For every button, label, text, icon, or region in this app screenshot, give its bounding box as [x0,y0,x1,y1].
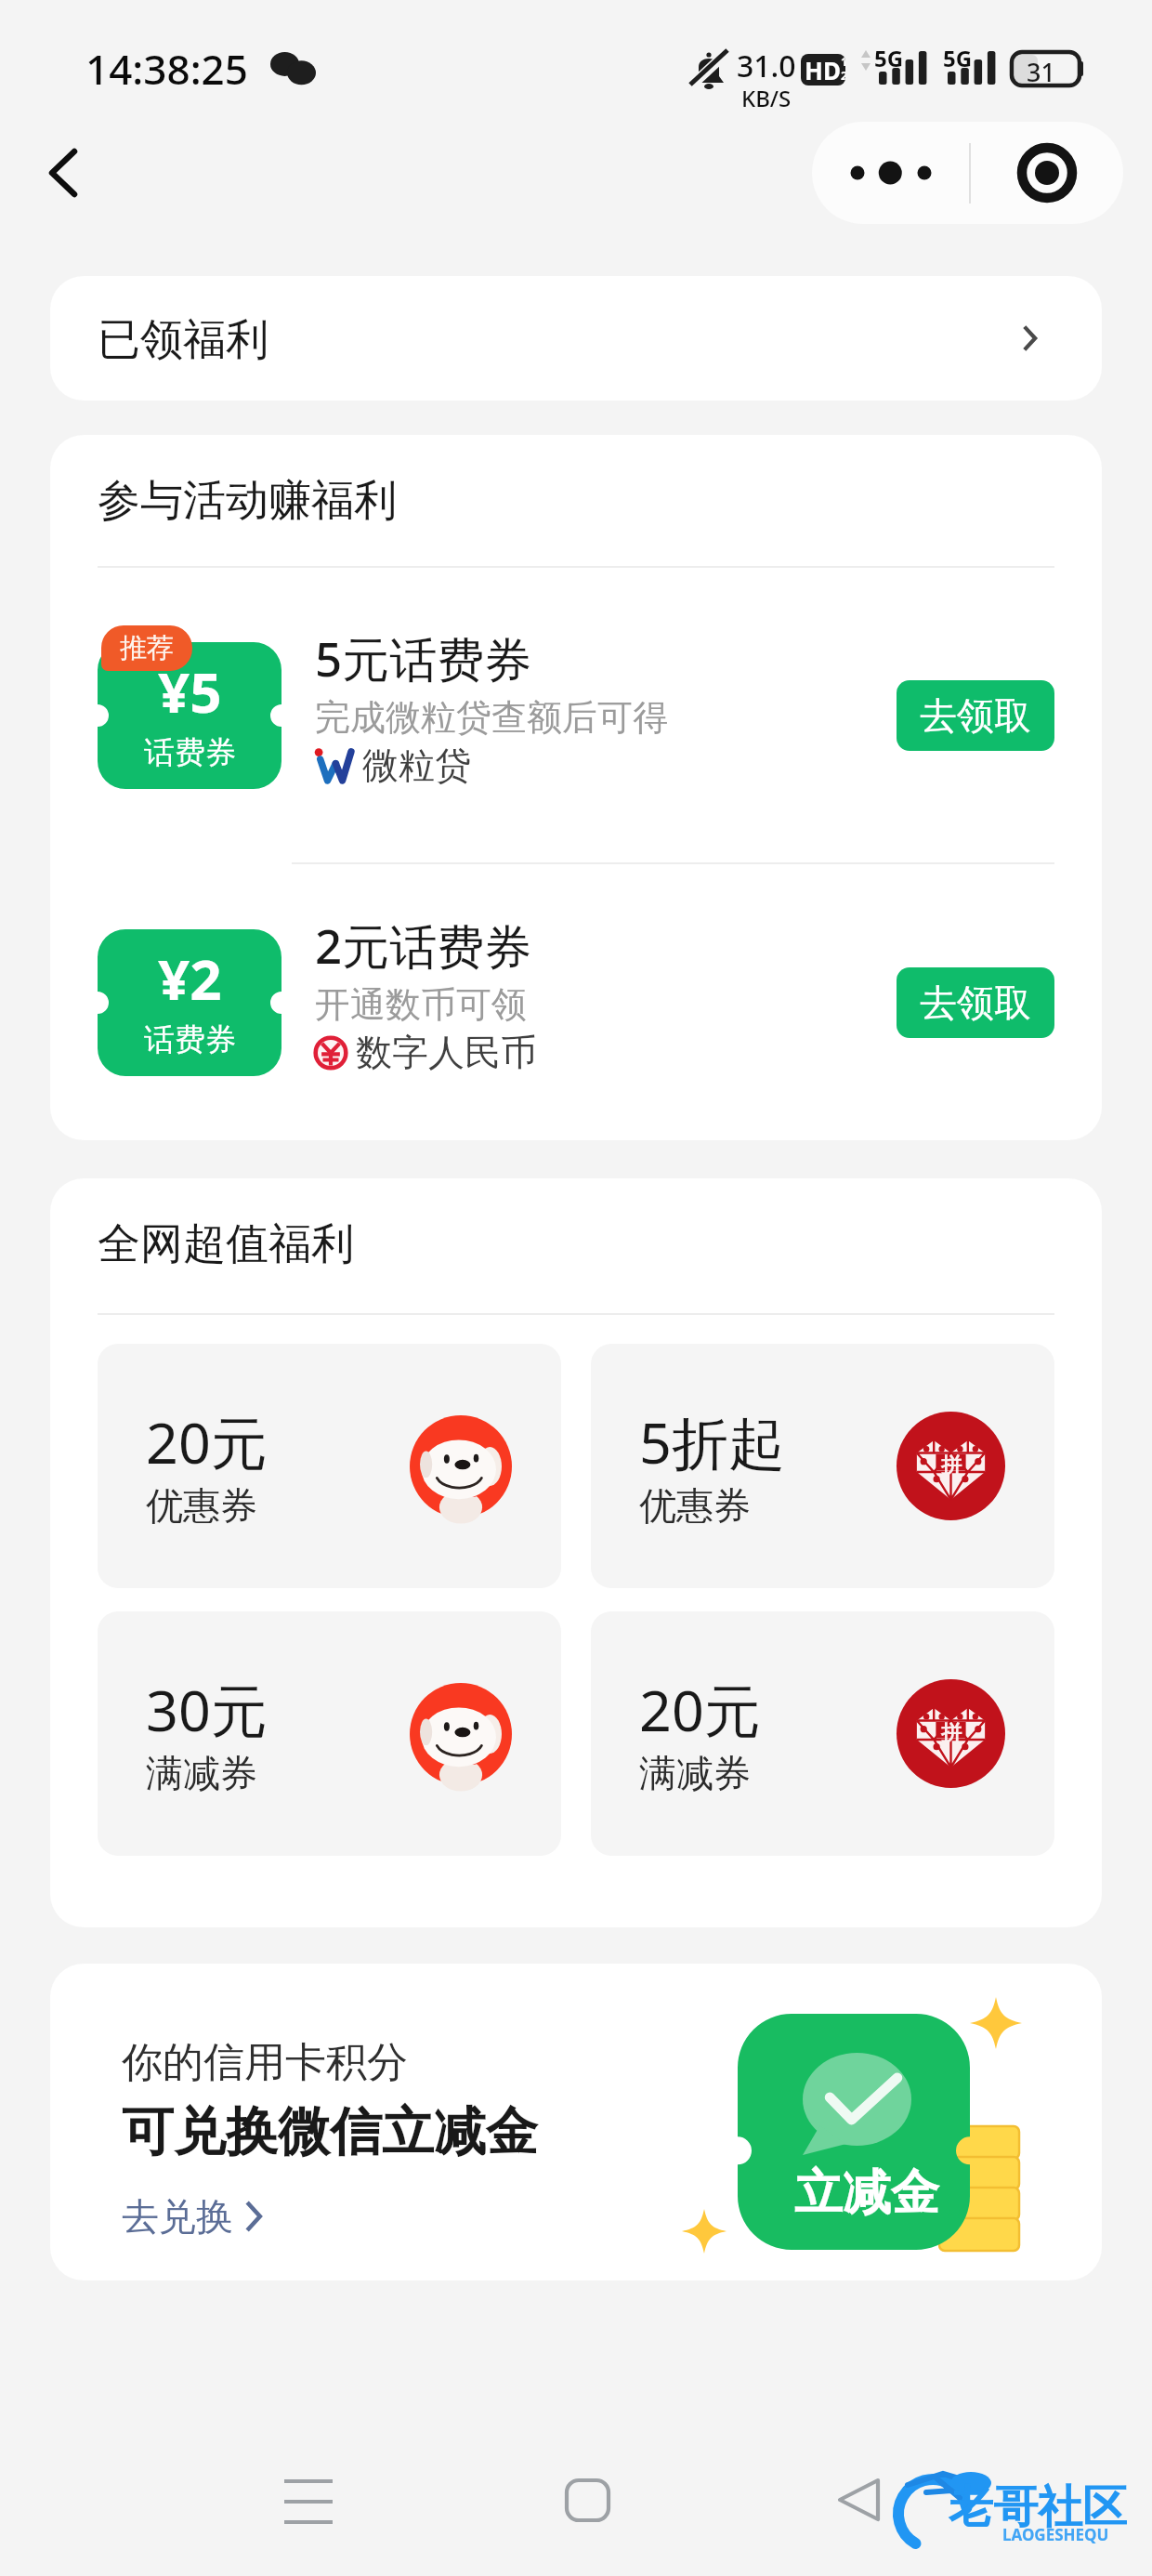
staticText: 话费券 [144,733,236,772]
staticText: 开通数币可领 [315,982,527,1027]
staticText: 5元话费券 [315,625,532,690]
staticText: 满减券 [639,1750,751,1796]
staticText: 5G [874,43,904,73]
button[interactable]: 5折起 [591,1344,1054,1588]
staticText: 优惠券 [146,1482,257,1529]
button[interactable]: 你的信用卡积分 [50,1964,1102,2280]
staticText: 20元 [639,1671,761,1748]
staticText: 去领取 [920,692,1031,739]
staticText: 去领取 [920,979,1031,1026]
staticText: 完成微粒贷查额后可得 [315,695,668,740]
staticText: 1 [841,54,845,70]
button[interactable]: 去领取 [897,967,1054,1038]
button[interactable]: Back [24,128,98,217]
button[interactable]: 去领取 [897,680,1054,751]
staticText: 30元 [146,1671,268,1748]
button[interactable]: ¥5 [98,568,1054,862]
staticText: ¥2 [158,940,222,1017]
staticText: 可兑换微信立减金 [122,2099,538,2165]
button[interactable]: Home [531,2448,643,2552]
staticText: 满减券 [146,1750,257,1796]
staticText: 数字人民币 [356,1030,537,1075]
staticText: 话费券 [144,1020,236,1059]
staticText: 去兑换 [122,2193,233,2240]
staticText: 微粒贷 [362,743,471,788]
staticText: 参与活动赚福利 [98,474,397,528]
button[interactable]: More [812,122,969,224]
staticText: ¥5 [158,653,222,729]
button[interactable]: ¥2 [98,864,1054,1140]
button[interactable]: 20元 [98,1344,561,1588]
staticText: 5G [943,43,973,73]
staticText: 已领福利 [98,313,268,367]
staticText: 你的信用卡积分 [122,2037,408,2088]
staticText: HD [805,54,841,85]
button[interactable]: Recent apps [253,2448,364,2552]
button[interactable]: Close mini program [971,122,1123,224]
button[interactable]: 20元 [591,1611,1054,1856]
button[interactable]: Back [803,2448,914,2552]
staticText: 立减金 [794,2162,939,2224]
staticText: 2 [841,67,845,82]
button[interactable]: 30元 [98,1611,561,1856]
staticText: 5折起 [639,1403,785,1480]
staticText: 31 [1027,55,1055,89]
staticText: 老哥社区 [949,2479,1127,2535]
staticText: KB/S [741,83,792,107]
staticText: 2元话费券 [315,913,532,978]
staticText: 拼 [941,1720,962,1746]
staticText: 14:38:25 [85,41,248,97]
staticText: 拼 [941,1452,962,1479]
staticText: 全网超值福利 [98,1217,354,1271]
staticText: 优惠券 [639,1482,751,1529]
button[interactable]: 已领福利 [50,276,1102,401]
staticText: 31.0 [737,46,796,86]
staticText: 推荐 [120,631,174,665]
staticText: LAOGESHEQU [1002,2524,1109,2545]
staticText: 20元 [146,1403,268,1480]
